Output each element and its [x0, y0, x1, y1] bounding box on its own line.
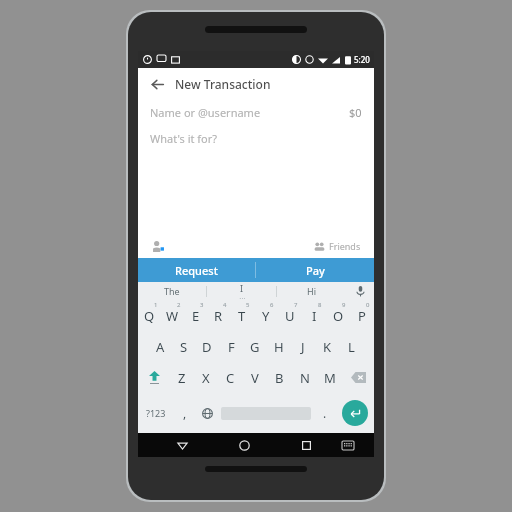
button[interactable]: Home [233, 434, 255, 456]
staticText: D [202, 338, 212, 356]
staticText: 2 [177, 301, 181, 309]
button[interactable]: Z [170, 362, 194, 393]
staticText: . [323, 405, 327, 421]
button[interactable]: Hi [277, 282, 346, 300]
staticText: B [275, 369, 284, 387]
staticText: 6 [270, 301, 274, 309]
button[interactable]: Shift [138, 362, 170, 393]
button[interactable]: What's it for? [138, 125, 374, 151]
button[interactable]: Request [138, 258, 255, 282]
staticText: I [240, 282, 244, 294]
button[interactable]: R [207, 300, 230, 331]
button[interactable]: X [194, 362, 218, 393]
staticText: 0 [366, 301, 370, 309]
staticText: 5:20 [354, 54, 370, 65]
button[interactable]: I [207, 282, 276, 300]
button[interactable]: Back [146, 73, 168, 95]
staticText: S [180, 338, 188, 356]
staticText: T [238, 307, 246, 325]
staticText: 1 [154, 301, 158, 309]
staticText: 4 [223, 301, 227, 309]
staticText: Z [178, 369, 186, 387]
button[interactable]: W [161, 300, 184, 331]
button[interactable]: I [302, 300, 326, 331]
button[interactable]: Pay [256, 258, 374, 282]
staticText: What's it for? [150, 131, 218, 146]
button[interactable]: N [292, 362, 317, 393]
button[interactable]: S [172, 331, 195, 362]
button[interactable]: H [267, 331, 291, 362]
staticText: Name or @username [150, 105, 261, 120]
button[interactable]: A [149, 331, 172, 362]
staticText: W [166, 307, 179, 325]
staticText: O [333, 307, 344, 325]
staticText: K [323, 338, 332, 356]
button[interactable]: . [314, 393, 336, 433]
button[interactable]: Y [254, 300, 278, 331]
button[interactable]: Name or @username [138, 99, 374, 125]
button[interactable]: , [174, 393, 196, 433]
staticText: ?123 [146, 407, 166, 419]
button[interactable]: K [315, 331, 339, 362]
staticText: Pay [306, 263, 325, 278]
button[interactable]: The [138, 282, 206, 300]
staticText: E [192, 307, 200, 325]
button[interactable]: Voice input [346, 282, 374, 300]
button[interactable]: ?123 [138, 393, 174, 433]
button[interactable]: Recent apps [295, 434, 317, 456]
button[interactable]: V [242, 362, 267, 393]
staticText: G [250, 338, 260, 356]
button[interactable]: Friends [311, 238, 364, 254]
button[interactable]: J [291, 331, 315, 362]
staticText: Y [262, 307, 270, 325]
button[interactable]: C [218, 362, 242, 393]
button[interactable]: F [219, 331, 243, 362]
button[interactable]: P [350, 300, 374, 331]
staticText: I [312, 307, 317, 325]
staticText: 5 [246, 301, 250, 309]
staticText: 3 [200, 301, 204, 309]
staticText: L [348, 338, 355, 356]
staticText: 7 [294, 301, 298, 309]
button[interactable]: Add person [148, 236, 168, 256]
button[interactable]: Q [138, 300, 161, 331]
button[interactable]: G [243, 331, 267, 362]
staticText: Hi [307, 285, 316, 297]
staticText: R [214, 307, 223, 325]
staticText: N [300, 369, 310, 387]
button[interactable]: T [230, 300, 254, 331]
staticText: M [324, 369, 336, 387]
staticText: X [202, 369, 210, 387]
button[interactable]: B [267, 362, 292, 393]
button[interactable]: Enter [342, 400, 368, 426]
staticText: , [183, 405, 187, 421]
staticText: Q [144, 307, 155, 325]
button[interactable]: E [184, 300, 207, 331]
staticText: P [358, 307, 366, 325]
button[interactable]: Backspace [342, 362, 374, 393]
button[interactable]: D [195, 331, 219, 362]
staticText: ⋯ [239, 294, 245, 300]
staticText: Friends [329, 240, 361, 252]
button[interactable]: Change language [196, 393, 218, 433]
staticText: The [164, 285, 180, 297]
staticText: H [274, 338, 284, 356]
staticText: F [228, 338, 235, 356]
staticText: C [226, 369, 235, 387]
staticText: U [285, 307, 295, 325]
staticText: A [156, 338, 165, 356]
button[interactable]: Keyboard [337, 434, 359, 456]
staticText: J [301, 338, 305, 356]
button[interactable]: Back [171, 434, 193, 456]
button[interactable]: U [278, 300, 302, 331]
button[interactable]: O [326, 300, 350, 331]
staticText: New Transaction [175, 76, 271, 92]
staticText: $0 [349, 105, 362, 120]
staticText: Request [175, 263, 218, 278]
staticText: 8 [318, 301, 322, 309]
staticText: 9 [342, 301, 346, 309]
button[interactable]: L [339, 331, 363, 362]
staticText: V [251, 369, 259, 387]
button[interactable]: M [317, 362, 342, 393]
